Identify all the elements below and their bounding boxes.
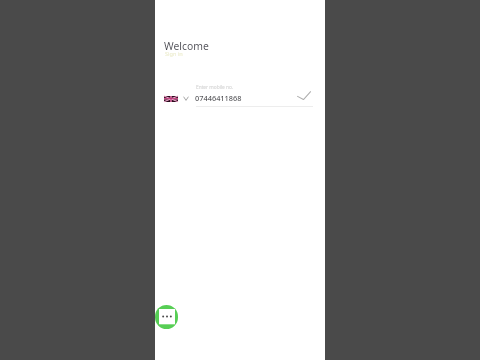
staticText: Enter mobile no. <box>196 84 234 91</box>
button[interactable]: Enter mobile no. <box>193 82 315 108</box>
staticText: Welcome <box>164 39 209 53</box>
staticText: 07446411868 <box>195 93 242 103</box>
button[interactable]: Select country code <box>162 90 191 107</box>
staticText: Sign in <box>165 50 183 58</box>
button[interactable]: Open chat support <box>155 305 178 329</box>
button[interactable]: Number verified <box>294 86 313 104</box>
